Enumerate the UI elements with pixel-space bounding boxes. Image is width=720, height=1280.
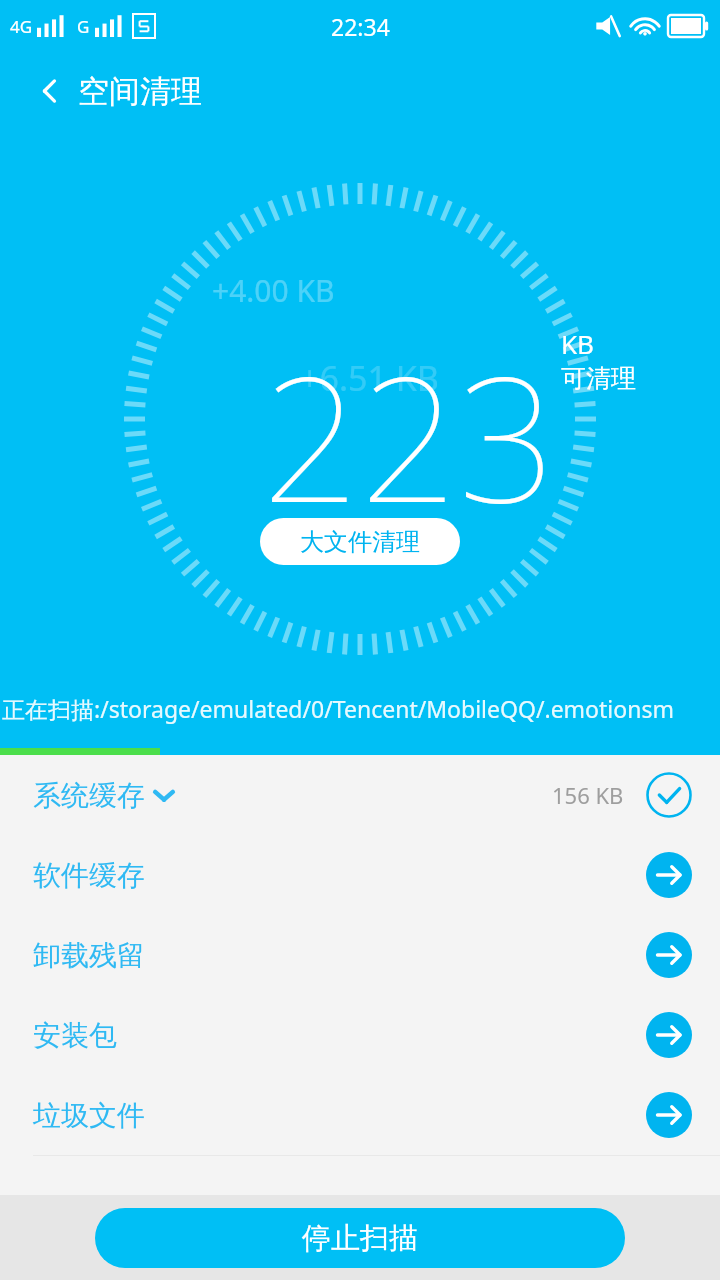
button[interactable]: Back [28,69,72,113]
staticText: 停止扫描 [302,1220,418,1257]
staticText: KB [561,326,594,361]
button[interactable]: 垃圾文件 详情 [646,1092,692,1138]
button[interactable]: 系统缓存 [0,755,720,835]
staticText: 空间清理 [78,72,202,111]
staticText: +6.51 KB [300,355,439,401]
button[interactable]: 软件缓存 [0,835,720,915]
staticText: G [77,15,90,38]
button[interactable]: 安装包 [0,995,720,1075]
staticText: 大文件清理 [300,527,420,557]
staticText: 223 [262,318,557,552]
button[interactable]: 停止扫描 [95,1208,625,1268]
staticText: 安装包 [33,1018,117,1053]
staticText: 156 KB [552,780,624,810]
staticText: 垃圾文件 [33,1098,145,1133]
staticText: +4.00 KB [212,270,335,311]
button[interactable]: 软件缓存 详情 [646,852,692,898]
button[interactable]: 安装包 详情 [646,1012,692,1058]
button[interactable]: 卸载残留 [0,915,720,995]
staticText: 4G [10,15,33,38]
staticText: 正在扫描:/storage/emulated/0/Tencent/MobileQ… [2,693,674,724]
staticText: 22:34 [331,11,390,42]
button[interactable]: 卸载残留 详情 [646,932,692,978]
button[interactable]: 大文件清理 [260,518,460,565]
staticText: 软件缓存 [33,858,145,893]
button[interactable]: 垃圾文件 [0,1075,720,1155]
staticText: 可清理 [561,363,636,394]
staticText: 卸载残留 [33,938,145,973]
button[interactable]: Selected [646,772,692,818]
staticText: 系统缓存 [33,778,145,813]
